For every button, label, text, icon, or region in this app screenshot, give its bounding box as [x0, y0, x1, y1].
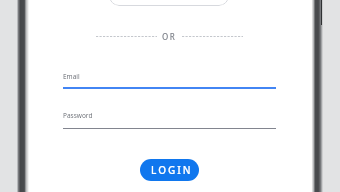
- staticText: LOGIN: [151, 163, 193, 177]
- button[interactable]: Email: [63, 66, 276, 90]
- button[interactable]: Password: [63, 105, 276, 129]
- staticText: Password: [63, 111, 93, 120]
- staticText: Email: [63, 72, 80, 81]
- button[interactable]: LOGIN: [140, 159, 199, 181]
- button[interactable]: SIGN UP: [109, 0, 229, 6]
- staticText: OR: [162, 31, 177, 42]
